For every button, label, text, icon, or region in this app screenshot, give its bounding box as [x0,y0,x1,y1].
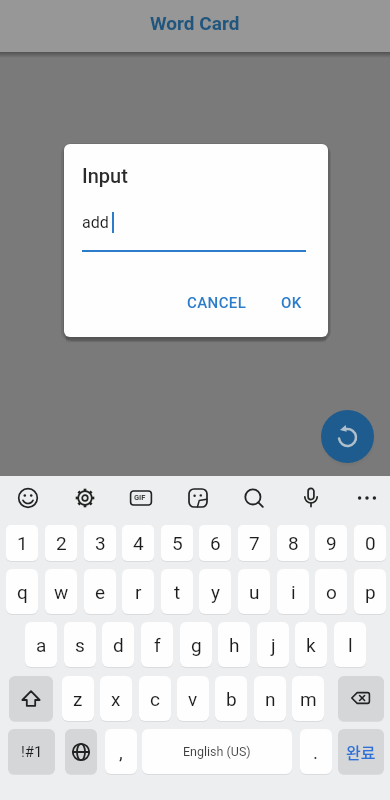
staticText: w [54,581,69,603]
staticText: l [348,634,353,656]
staticText: English (US) [183,744,251,759]
button[interactable]: f [141,622,173,667]
staticText: u [249,581,260,603]
staticText: t [174,581,181,603]
button[interactable]: a [25,622,57,667]
button[interactable]: 2 [45,525,77,561]
button[interactable]: x [100,676,132,721]
staticText: 7 [249,532,260,554]
staticText: OK [281,294,302,312]
button[interactable]: z [62,676,94,721]
staticText: x [111,688,121,710]
button[interactable] [240,484,268,512]
button[interactable]: !#1 [8,729,55,774]
button[interactable]: 4 [122,525,154,561]
staticText: , [119,741,123,763]
staticText: GIF [134,493,146,502]
staticText: k [306,634,316,656]
button[interactable] [184,484,212,512]
button[interactable]: r [122,569,154,614]
staticText: 0 [365,532,376,554]
button[interactable]: 1 [6,525,38,561]
button[interactable]: 완료 [338,729,384,774]
staticText: o [326,581,337,603]
button[interactable] [14,484,42,512]
staticText: . [313,741,319,763]
button[interactable]: CANCEL [184,288,250,317]
button[interactable] [297,484,325,512]
staticText: f [154,634,161,656]
button[interactable]: . [300,729,332,774]
button[interactable]: 8 [277,525,309,561]
staticText: 완료 [346,740,376,763]
button[interactable]: m [292,676,324,721]
button[interactable]: n [254,676,286,721]
button[interactable]: h [218,622,250,667]
button[interactable]: v [177,676,209,721]
button[interactable] [353,484,381,512]
button[interactable]: c [139,676,171,721]
staticText: 3 [95,532,106,554]
staticText: r [135,581,142,603]
button[interactable]: 3 [84,525,116,561]
staticText: c [150,688,160,710]
staticText: m [300,688,317,710]
staticText: z [73,688,83,710]
button[interactable]: g [180,622,212,667]
staticText: Input [82,164,128,187]
staticText: q [17,581,28,603]
button[interactable]: 5 [161,525,193,561]
button[interactable]: k [295,622,327,667]
staticText: y [211,581,220,603]
button[interactable]: e [84,569,116,614]
button[interactable]: d [102,622,134,667]
button[interactable]: English (US) [142,729,292,774]
staticText: a [36,634,47,656]
staticText: 9 [326,532,337,554]
staticText: d [113,634,124,656]
staticText: !#1 [21,743,43,761]
staticText: h [229,634,240,656]
staticText: 2 [56,532,67,554]
staticText: 1 [17,532,28,554]
staticText: n [265,688,276,710]
button[interactable]: 7 [238,525,270,561]
button[interactable]: q [6,569,38,614]
staticText: 8 [288,532,299,554]
staticText: CANCEL [187,294,247,312]
button[interactable]: w [45,569,77,614]
button[interactable]: i [277,569,309,614]
button[interactable] [71,484,99,512]
button[interactable]: t [161,569,193,614]
button[interactable]: 0 [354,525,386,561]
staticText: 6 [210,532,221,554]
staticText: b [226,688,237,710]
button[interactable] [9,676,53,721]
button[interactable]: l [334,622,366,667]
button[interactable]: u [238,569,270,614]
button[interactable] [338,676,384,721]
button[interactable]: 9 [315,525,347,561]
button[interactable]: b [215,676,247,721]
staticText: 4 [133,532,144,554]
staticText: i [291,581,296,603]
staticText: s [75,634,85,656]
button[interactable]: y [199,569,231,614]
button[interactable]: p [354,569,386,614]
button[interactable]: 6 [199,525,231,561]
staticText: 5 [172,532,183,554]
staticText: e [95,581,106,603]
button[interactable]: OK [265,288,317,317]
button[interactable]: s [64,622,96,667]
staticText: Word Card [150,12,240,34]
staticText: add [82,213,109,232]
button[interactable] [65,729,97,774]
button[interactable]: o [315,569,347,614]
button[interactable]: j [257,622,289,667]
button[interactable]: , [105,729,137,774]
button[interactable] [321,410,374,463]
staticText: p [365,581,376,603]
button[interactable] [127,484,155,512]
staticText: g [191,634,202,656]
staticText: j [271,634,276,656]
